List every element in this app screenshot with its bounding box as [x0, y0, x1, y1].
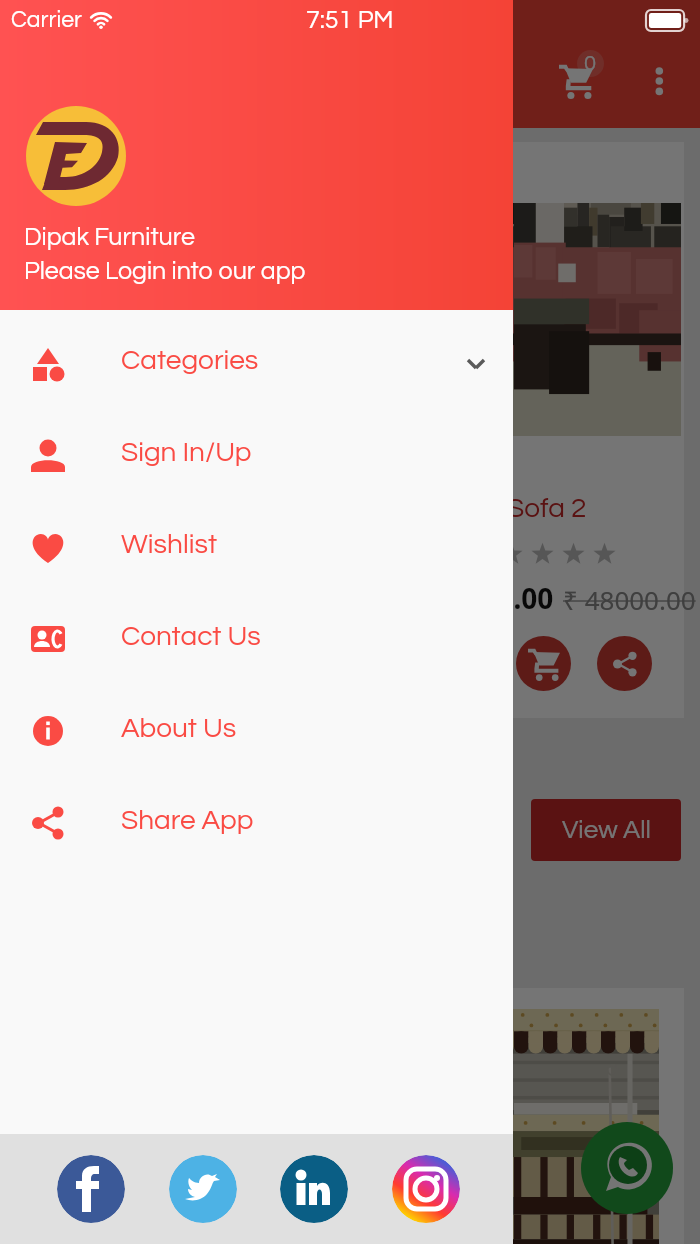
- staticText: Share App: [121, 806, 254, 835]
- staticText: Sign In/Up: [121, 438, 252, 467]
- button[interactable]: Chat on WhatsApp: [581, 1122, 673, 1214]
- staticText: Contact Us: [121, 622, 261, 651]
- button[interactable]: Add to cart: [516, 636, 571, 691]
- button[interactable]: Categories: [0, 317, 513, 409]
- button[interactable]: LinkedIn: [280, 1155, 348, 1223]
- staticText: Carrier: [11, 8, 82, 32]
- staticText: Wishlist: [121, 530, 218, 559]
- button[interactable]: Instagram: [392, 1155, 460, 1223]
- button[interactable]: Contact Us: [0, 593, 513, 685]
- staticText: Categories: [121, 346, 259, 375]
- staticText: Dipak Furniture: [24, 224, 195, 250]
- button[interactable]: Sign In/Up: [0, 409, 513, 501]
- button[interactable]: Facebook: [57, 1155, 125, 1223]
- staticText: ₹ 48000.00: [563, 582, 696, 617]
- button[interactable]: Wishlist: [0, 501, 513, 593]
- button[interactable]: Cart: [549, 54, 605, 110]
- button[interactable]: Share product: [597, 636, 652, 691]
- staticText: View All: [562, 817, 651, 844]
- staticText: Please Login into our app: [24, 258, 306, 284]
- staticText: 7:51 PM: [306, 7, 394, 33]
- staticText: 0: [584, 52, 597, 75]
- staticText: ₹ 45000.00: [410, 579, 554, 617]
- button[interactable]: Twitter: [169, 1155, 237, 1223]
- staticText: About Us: [121, 714, 237, 743]
- button[interactable]: Share App: [0, 777, 513, 869]
- button[interactable]: View All: [531, 799, 681, 861]
- button[interactable]: More options: [637, 59, 682, 104]
- button[interactable]: About Us: [0, 685, 513, 777]
- staticText: Sofa 2: [507, 494, 587, 523]
